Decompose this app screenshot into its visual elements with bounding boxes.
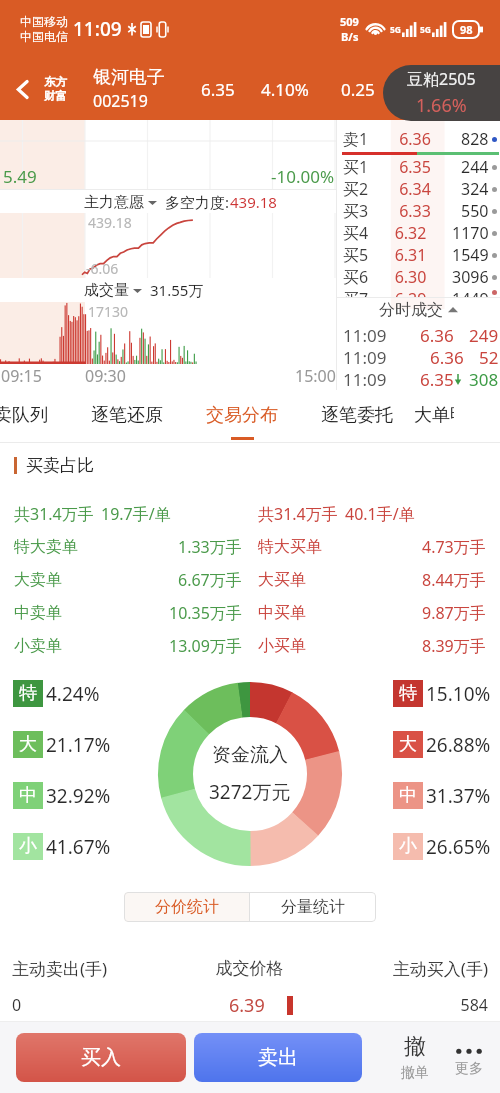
staticText: 成交量 [84,281,129,300]
staticText: 19.7手/单 [101,503,171,525]
button[interactable]: 买2 [343,178,497,200]
staticText: 财富 [44,89,67,103]
staticText: 买4 [343,222,369,244]
staticText: 共31.4万手 [258,503,338,525]
staticText: 大卖单 [14,570,62,590]
staticText: 4.24% [46,681,100,707]
staticText: 买卖占比 [26,455,94,476]
staticText: 21.17% [46,732,111,758]
staticText: 6.36 [430,346,464,368]
staticText: 卖出 [258,1045,298,1070]
staticText: 98 [460,22,473,37]
staticText: 6.39 [229,993,265,1018]
staticText: 26.65% [426,834,491,860]
staticText: 大单明细 [414,404,454,427]
staticText: 交易分布 [206,404,278,427]
button[interactable]: 买3 [343,200,497,222]
staticText: 特大买单 [258,537,322,557]
button[interactable]: 逐笔委托 [299,390,414,443]
staticText: 资金流入 [212,743,288,767]
button[interactable]: 卖出 [194,1033,362,1082]
staticText: 31.55万 [150,280,204,300]
button[interactable]: 逐笔还原 [69,390,184,443]
staticText: 多空力度: [165,192,230,212]
staticText: 32.92% [46,783,111,809]
staticText: 6.30 [369,266,452,288]
button[interactable]: 豆粕2505 [383,65,500,121]
button[interactable]: 大单明细 [414,390,454,443]
staticText: 8.39万手 [422,635,486,657]
staticText: 249 [469,324,499,346]
staticText: -10.00% [271,165,335,188]
staticText: 6.31 [369,244,452,266]
button[interactable]: 买4 [343,222,497,244]
button[interactable]: 更多 [440,1037,498,1078]
staticText: 11:09 [343,346,387,368]
button[interactable]: 11:09 [343,324,499,346]
button[interactable]: 分量统计 [250,892,376,922]
button[interactable]: 11:09 [343,346,499,368]
staticText: 6.34 [369,178,461,200]
button[interactable]: 撤 [390,1033,440,1082]
staticText: 共31.4万手 [14,503,94,525]
button[interactable]: 分价统计 [124,892,249,922]
staticText: 中 [19,784,37,807]
staticText: 5.49 [3,165,37,188]
staticText: 分时成交 [379,300,443,320]
staticText: 6.29 [369,288,452,297]
staticText: 主动卖出(手) [12,957,170,980]
staticText: 买3 [343,200,369,222]
staticText: 1.33万手 [178,536,242,558]
staticText: 豆粕2505 [407,68,476,90]
staticText: 26.88% [426,732,491,758]
button[interactable]: 卖1 [343,128,497,150]
staticText: 小 [399,835,417,858]
staticText: 成交价格 [170,958,329,979]
staticText: -6.06 [86,259,119,278]
staticText: 0.25 [341,78,375,101]
button[interactable]: 买5 [343,244,497,266]
staticText: 509 [340,14,359,29]
staticText: 撤单 [401,1064,429,1082]
staticText: 1170 [452,222,489,244]
staticText: 分量统计 [281,897,345,917]
staticText: 8.44万手 [422,569,486,591]
button[interactable]: Back [6,73,38,105]
staticText: 4.73万手 [422,536,486,558]
staticText: 6.32 [369,222,452,244]
staticText: 银河电子 [93,66,165,89]
staticText: 15.10% [426,681,491,707]
staticText: 主力意愿 [84,193,144,212]
staticText: 小买单 [258,636,306,656]
staticText: B/s [341,29,359,44]
button[interactable]: 买入 [16,1033,186,1082]
staticText: 小卖单 [14,636,62,656]
staticText: 308 [469,368,499,390]
staticText: 买卖队列 [0,404,48,427]
staticText: 244 [461,156,489,178]
staticText: 11:09 [343,368,387,390]
staticText: 特 [19,682,37,705]
staticText: 439.18 [230,192,277,212]
button[interactable]: 11:09 [343,368,499,390]
button[interactable]: 买6 [343,266,497,288]
staticText: 东方 [44,75,67,89]
staticText: 中国移动 [20,14,68,29]
staticText: 买1 [343,156,369,178]
staticText: 特 [399,682,417,705]
button[interactable]: 买7 [343,288,497,297]
button[interactable]: 买1 [343,156,497,178]
staticText: 撤 [404,1033,426,1061]
staticText: 31.37% [426,783,491,809]
staticText: 买6 [343,266,369,288]
staticText: 卖1 [343,128,369,150]
staticText: 逐笔委托 [321,404,393,427]
staticText: 主动买入(手) [329,957,488,980]
staticText: 0 [12,994,170,1016]
staticText: 大 [399,733,417,756]
staticText: 1.66% [416,93,467,118]
button[interactable]: 买卖队列 [0,390,69,443]
button[interactable]: 交易分布 [184,390,299,443]
staticText: 6.35 [420,368,454,390]
staticText: 6.36 [420,324,454,346]
